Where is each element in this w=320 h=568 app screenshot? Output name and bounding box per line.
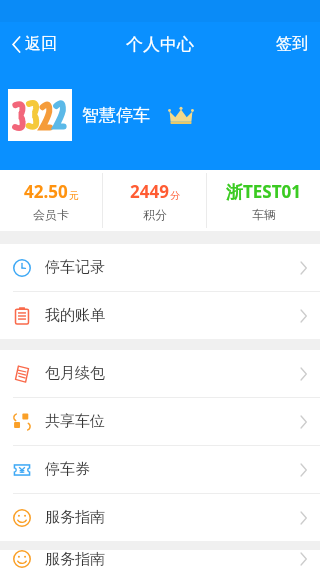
button[interactable]: 2449 bbox=[103, 170, 206, 231]
staticText: 停车记录 bbox=[45, 258, 105, 277]
staticText: 服务指南 bbox=[45, 550, 105, 568]
button[interactable]: 签到 bbox=[264, 22, 320, 66]
staticText: 我的账单 bbox=[45, 306, 105, 325]
button[interactable]: 浙TEST01 bbox=[207, 170, 320, 231]
button[interactable]: 包月续包 bbox=[0, 350, 320, 397]
button[interactable]: 我的账单 bbox=[0, 292, 320, 339]
button[interactable]: 42.50 bbox=[0, 170, 102, 231]
button[interactable]: 共享车位 bbox=[0, 398, 320, 445]
other: VIP crown bbox=[168, 106, 194, 124]
button[interactable]: 服务指南 bbox=[0, 494, 320, 541]
button[interactable]: 停车记录 bbox=[0, 244, 320, 291]
staticText: 2449 bbox=[130, 180, 169, 203]
staticText: 会员卡 bbox=[33, 207, 69, 222]
staticText: 积分 bbox=[143, 207, 167, 222]
staticText: 签到 bbox=[276, 34, 308, 54]
staticText: 停车券 bbox=[45, 460, 90, 479]
button[interactable]: Avatar bbox=[8, 89, 72, 141]
staticText: 元 bbox=[69, 189, 79, 202]
staticText: 服务指南 bbox=[45, 508, 105, 527]
button[interactable]: 服务指南 bbox=[0, 550, 320, 568]
staticText: 包月续包 bbox=[45, 364, 105, 383]
button[interactable]: 停车券 bbox=[0, 446, 320, 493]
staticText: 车辆 bbox=[252, 207, 276, 222]
staticText: 返回 bbox=[25, 34, 57, 54]
staticText: 个人中心 bbox=[126, 34, 194, 55]
button[interactable]: 返回 bbox=[0, 22, 69, 66]
staticText: 智慧停车 bbox=[82, 105, 150, 126]
staticText: 浙TEST01 bbox=[226, 180, 301, 203]
staticText: 分 bbox=[170, 189, 180, 202]
staticText: 共享车位 bbox=[45, 412, 105, 431]
staticText: 42.50 bbox=[24, 180, 68, 203]
